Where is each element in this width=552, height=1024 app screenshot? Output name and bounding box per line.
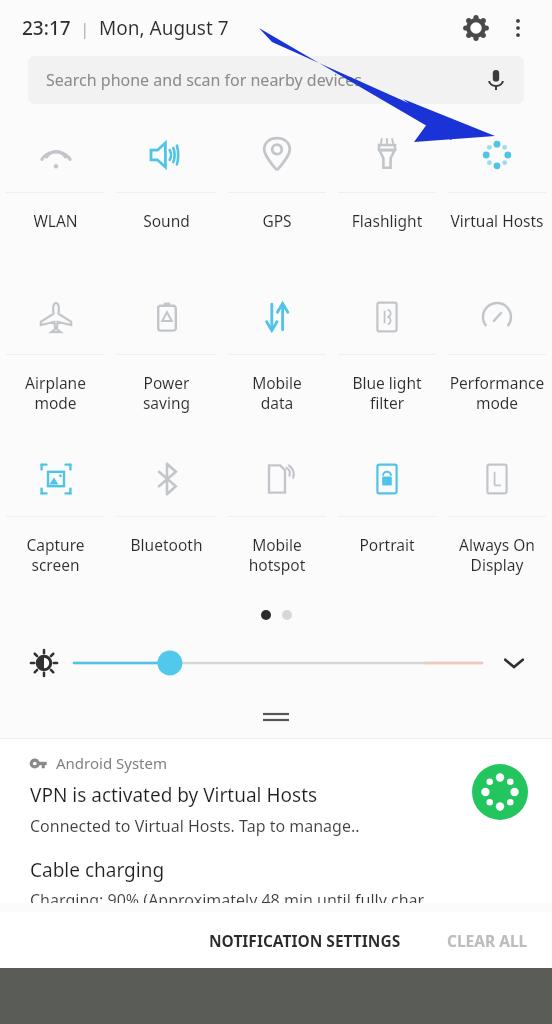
staticText: CLEAR ALL [447, 930, 528, 951]
button[interactable]: More options [498, 8, 538, 48]
button[interactable]: Mobile data [222, 276, 332, 438]
staticText: Performance mode [442, 372, 552, 414]
staticText: NOTIFICATION SETTINGS [209, 930, 401, 951]
button[interactable]: WLAN [0, 114, 111, 276]
button[interactable]: Sound [111, 114, 222, 276]
staticText: | [80, 17, 90, 40]
button[interactable]: CLEAR ALL [433, 920, 542, 961]
staticText: Airplane mode [0, 372, 111, 414]
button[interactable]: Virtual Hosts [442, 114, 552, 276]
staticText: Sound [111, 210, 222, 231]
button[interactable]: Performance mode [442, 276, 552, 438]
staticText: GPS [222, 210, 332, 231]
button[interactable]: Search phone and scan for nearby devices [28, 56, 524, 104]
button[interactable]: Portrait [332, 438, 442, 600]
button[interactable]: Android System [0, 739, 552, 857]
button[interactable]: Bluetooth [111, 438, 222, 600]
button[interactable]: Blue light filter [332, 276, 442, 438]
staticText: Blue light filter [332, 372, 442, 414]
staticText: Android System [56, 753, 168, 773]
staticText: Cable charging [30, 857, 165, 883]
staticText: Charging: 90% (Approximately 48 min unti… [30, 889, 425, 903]
button[interactable]: NOTIFICATION SETTINGS [195, 920, 415, 961]
staticText: Power saving [111, 372, 222, 414]
staticText: 23:17 [22, 15, 71, 41]
staticText: Mobile hotspot [222, 534, 332, 576]
button[interactable]: Capture screen [0, 438, 111, 600]
staticText: Bluetooth [111, 534, 222, 555]
staticText: Mobile data [222, 372, 332, 414]
button[interactable]: Expand brightness [492, 641, 536, 685]
button[interactable]: GPS [222, 114, 332, 276]
button[interactable]: Power saving [111, 276, 222, 438]
staticText: VPN is activated by Virtual Hosts [30, 782, 318, 808]
button[interactable]: Drag handle [0, 696, 552, 738]
staticText: Portrait [332, 534, 442, 555]
staticText: Always On Display [442, 534, 552, 576]
button[interactable]: Always On Display [442, 438, 552, 600]
staticText: Flashlight [332, 210, 442, 231]
staticText: Capture screen [0, 534, 111, 576]
staticText: Connected to Virtual Hosts. Tap to manag… [30, 815, 360, 837]
button[interactable]: Airplane mode [0, 276, 111, 438]
button[interactable]: Settings [454, 6, 498, 50]
button[interactable]: Flashlight [332, 114, 442, 276]
staticText: Virtual Hosts [442, 210, 552, 231]
button[interactable]: Mobile hotspot [222, 438, 332, 600]
staticText: Search phone and scan for nearby devices [46, 69, 362, 91]
staticText: Mon, August 7 [99, 15, 229, 41]
staticText: WLAN [0, 210, 111, 231]
